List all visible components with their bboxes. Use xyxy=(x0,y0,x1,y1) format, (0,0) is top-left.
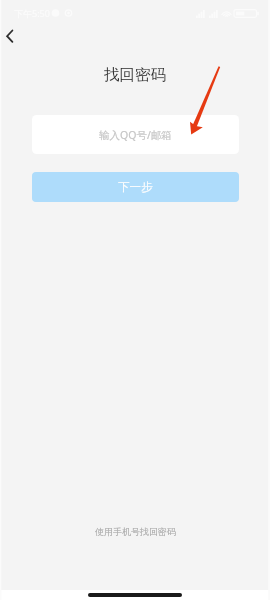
button[interactable]: 下一步 xyxy=(32,172,239,202)
button[interactable]: 输入QQ号/邮箱 xyxy=(32,115,239,154)
button[interactable]: 使用手机号找回密码 xyxy=(0,523,270,539)
staticText: 输入QQ号/邮箱 xyxy=(99,128,172,142)
staticText: 下一步 xyxy=(118,180,153,194)
staticText: 使用手机号找回密码 xyxy=(95,526,176,537)
staticText: 找回密码 xyxy=(0,65,270,85)
button[interactable]: Back xyxy=(0,25,22,47)
